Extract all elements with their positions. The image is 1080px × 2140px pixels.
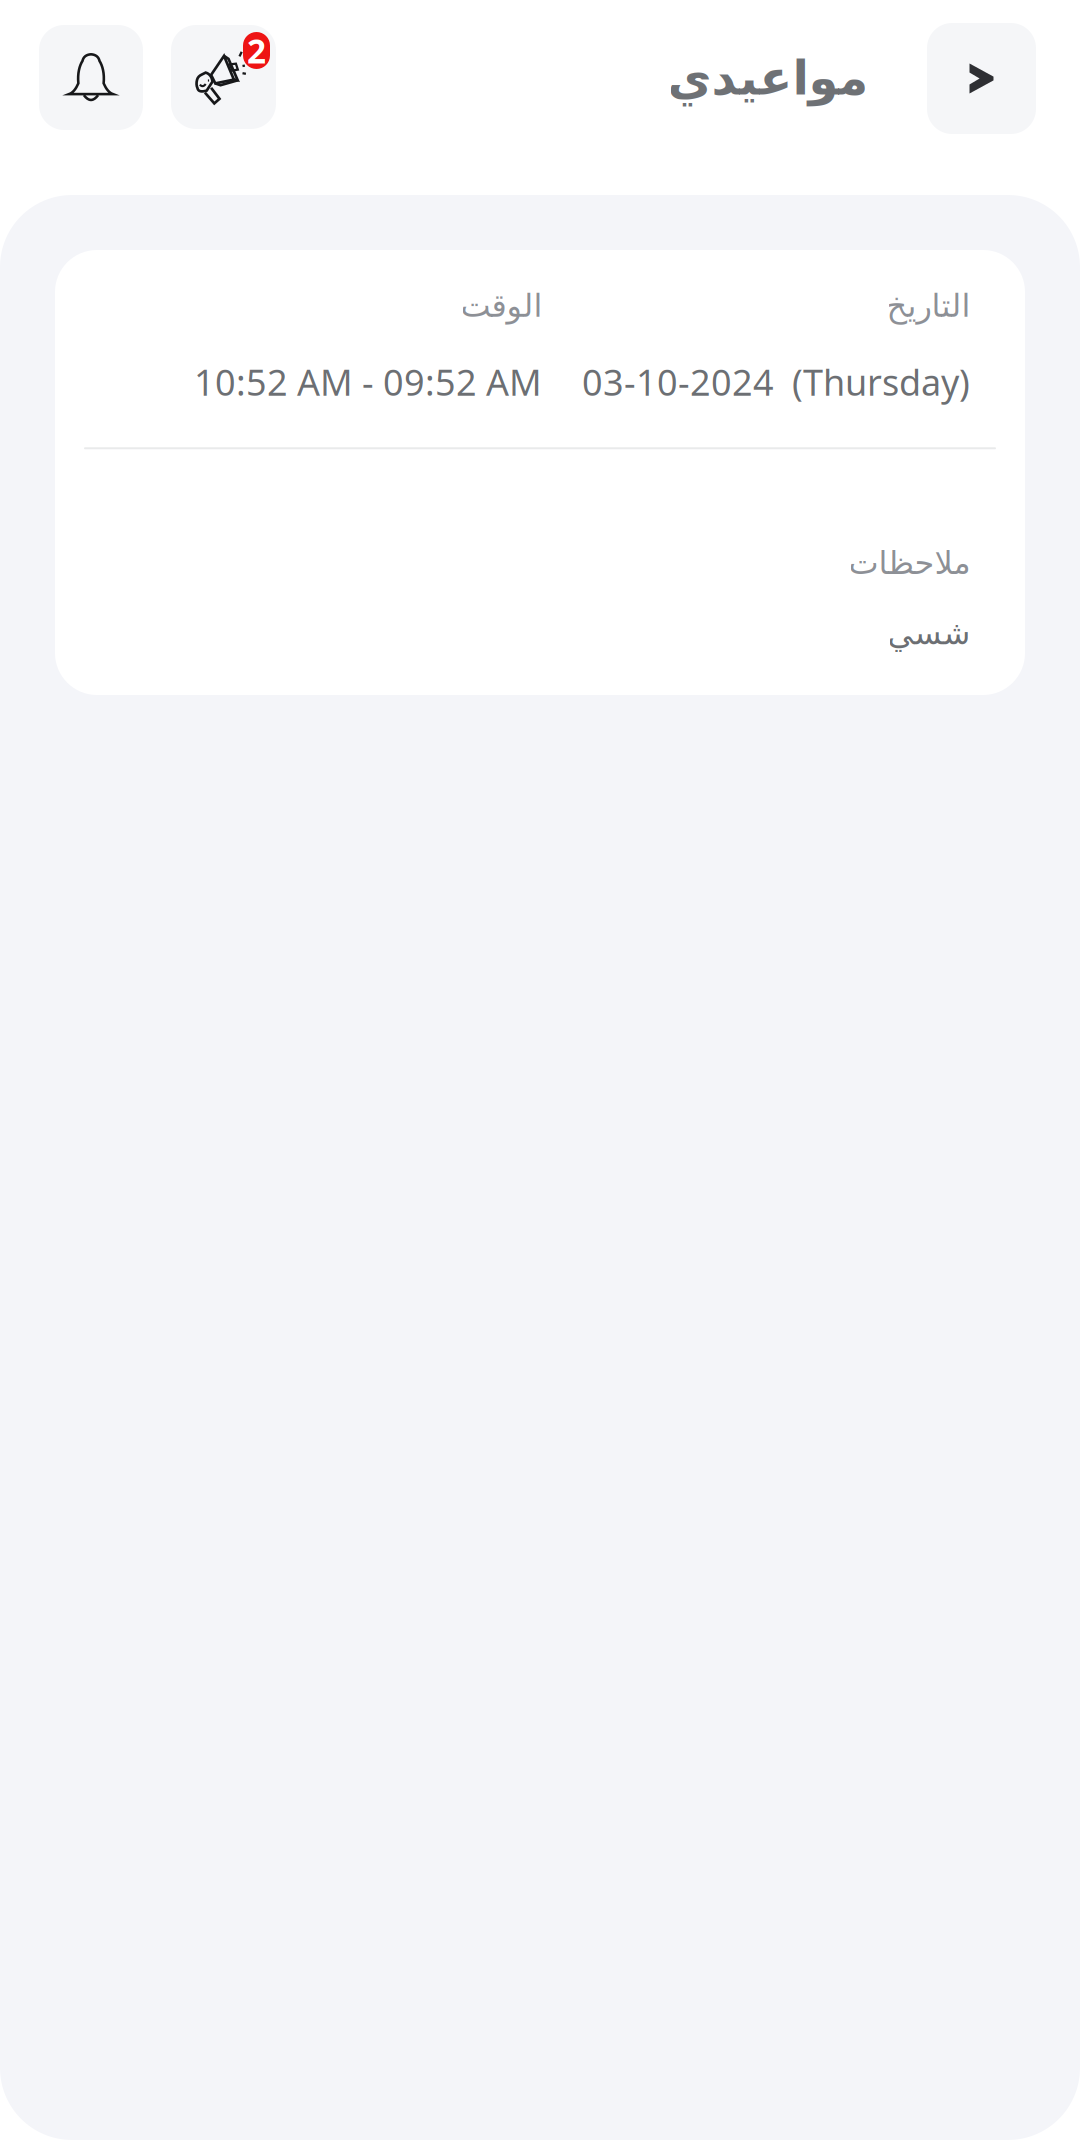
button[interactable]: Announcements (171, 25, 276, 129)
button[interactable]: Notifications (39, 25, 143, 130)
staticText: التاريخ (886, 287, 970, 324)
staticText: الوقت (460, 287, 542, 324)
button[interactable]: Back (927, 23, 1036, 134)
staticText: 03-10-2024 (Thursday) (582, 357, 970, 406)
staticText: 10:52 AM - 09:52 AM (194, 357, 542, 406)
staticText: ملاحظات (848, 544, 970, 581)
staticText: 2 (247, 28, 266, 73)
staticText: مواعيدي (667, 50, 868, 106)
button[interactable]: الوقت (55, 250, 1025, 695)
staticText: شسي (887, 614, 970, 652)
